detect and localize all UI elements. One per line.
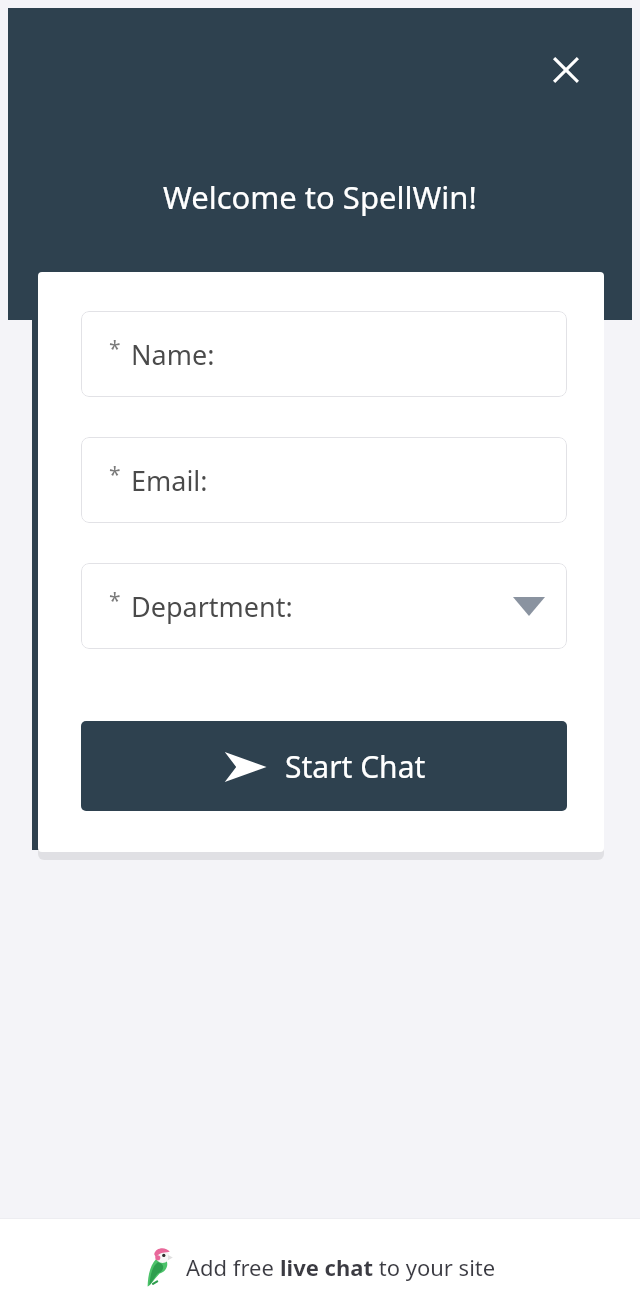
button[interactable]: *	[81, 437, 567, 523]
button[interactable]: Close	[534, 38, 598, 102]
staticText: Welcome to SpellWin!	[163, 176, 477, 218]
staticText: Start Chat	[285, 746, 426, 787]
staticText: *	[109, 460, 121, 489]
staticText: Add free	[186, 1252, 280, 1282]
button[interactable]: Add free	[0, 1218, 640, 1316]
staticText: Department:	[131, 588, 293, 625]
button[interactable]: *	[81, 563, 567, 649]
staticText: Email:	[131, 462, 208, 499]
staticText: live chat	[280, 1252, 373, 1282]
button[interactable]: Start Chat	[81, 721, 567, 811]
staticText: *	[109, 586, 121, 615]
staticText: to your site	[373, 1252, 496, 1282]
staticText: Name:	[131, 336, 215, 373]
staticText: *	[109, 334, 121, 363]
button[interactable]: *	[81, 311, 567, 397]
